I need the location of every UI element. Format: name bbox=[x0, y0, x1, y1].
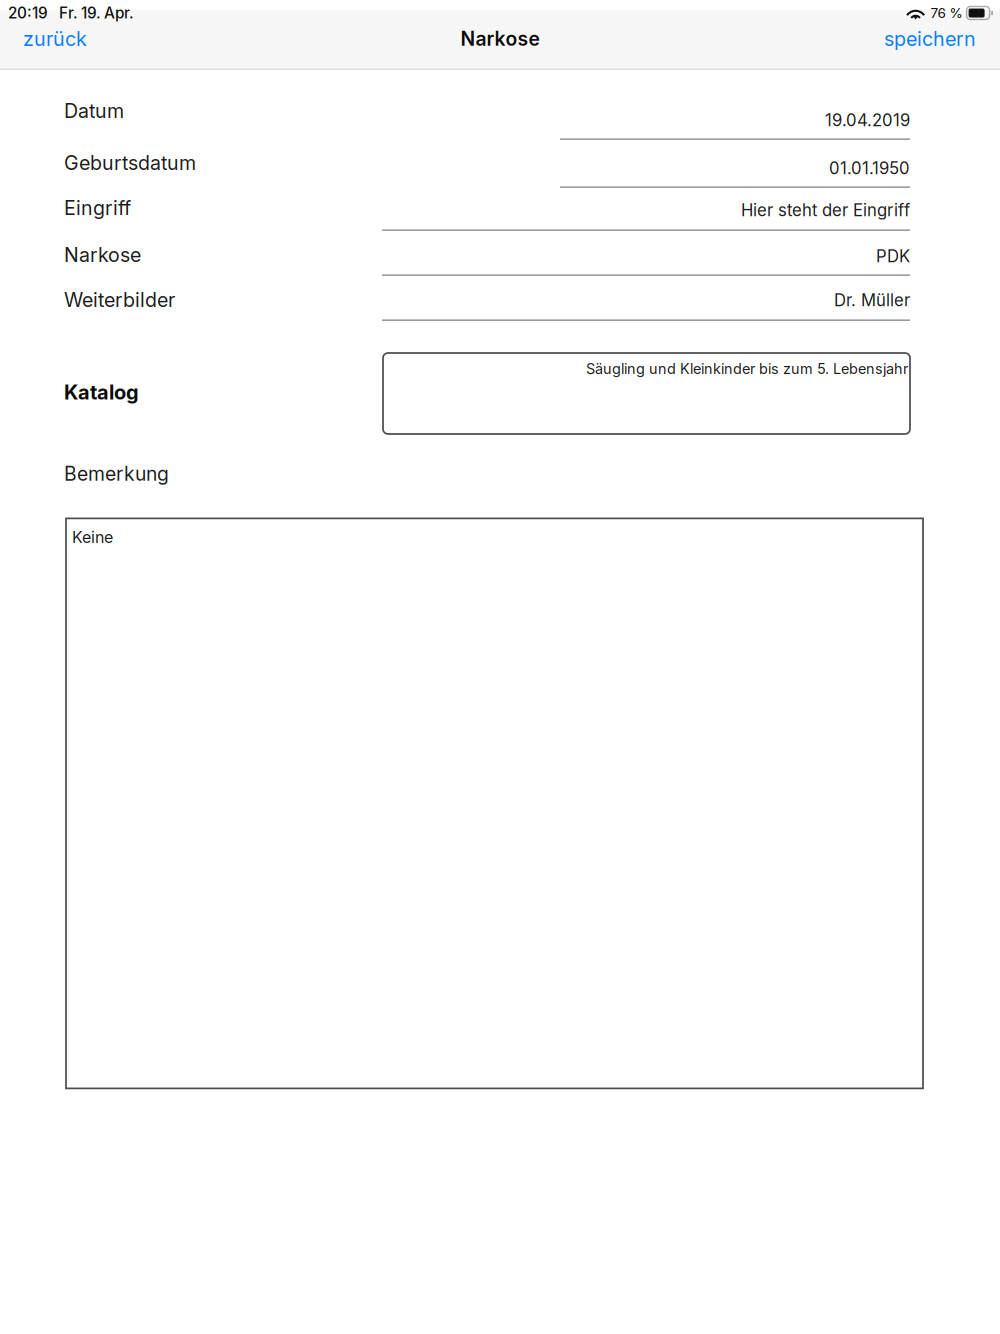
staticText: Narkose bbox=[460, 27, 539, 50]
button[interactable]: Narkose bbox=[0, 231, 1000, 276]
staticText: Narkose bbox=[64, 243, 141, 267]
staticText: 20:19 bbox=[8, 4, 48, 22]
staticText: Eingriff bbox=[64, 196, 131, 220]
staticText: Bemerkung bbox=[64, 462, 169, 485]
staticText: zurück bbox=[23, 27, 87, 51]
staticText: PDK bbox=[876, 246, 910, 266]
button[interactable]: zurück bbox=[15, 24, 95, 60]
button[interactable]: Datum bbox=[0, 91, 1000, 140]
staticText: speichern bbox=[884, 27, 976, 51]
staticText: Weiterbilder bbox=[64, 288, 175, 312]
staticText: Dr. Müller bbox=[834, 290, 910, 310]
staticText: Hier steht der Eingriff bbox=[741, 200, 910, 220]
button[interactable]: Weiterbilder bbox=[0, 276, 1000, 321]
staticText: Keine bbox=[72, 527, 113, 547]
button[interactable]: Geburtsdatum bbox=[0, 140, 1000, 188]
staticText: 76 % bbox=[931, 5, 963, 21]
button[interactable]: Eingriff bbox=[0, 188, 1000, 231]
staticText: 19.04.2019 bbox=[825, 110, 910, 130]
staticText: Säugling und Kleinkinder bis zum 5. Lebe… bbox=[586, 360, 908, 377]
staticText: Datum bbox=[64, 99, 124, 123]
staticText: Geburtsdatum bbox=[64, 151, 196, 175]
button[interactable]: speichern bbox=[876, 24, 984, 60]
staticText: 01.01.1950 bbox=[829, 158, 910, 178]
staticText: Katalog bbox=[64, 380, 139, 404]
button[interactable]: Säugling und Kleinkinder bis zum 5. Lebe… bbox=[383, 353, 910, 434]
button[interactable]: Keine bbox=[66, 518, 923, 1088]
staticText: Fr. 19. Apr. bbox=[59, 4, 134, 22]
